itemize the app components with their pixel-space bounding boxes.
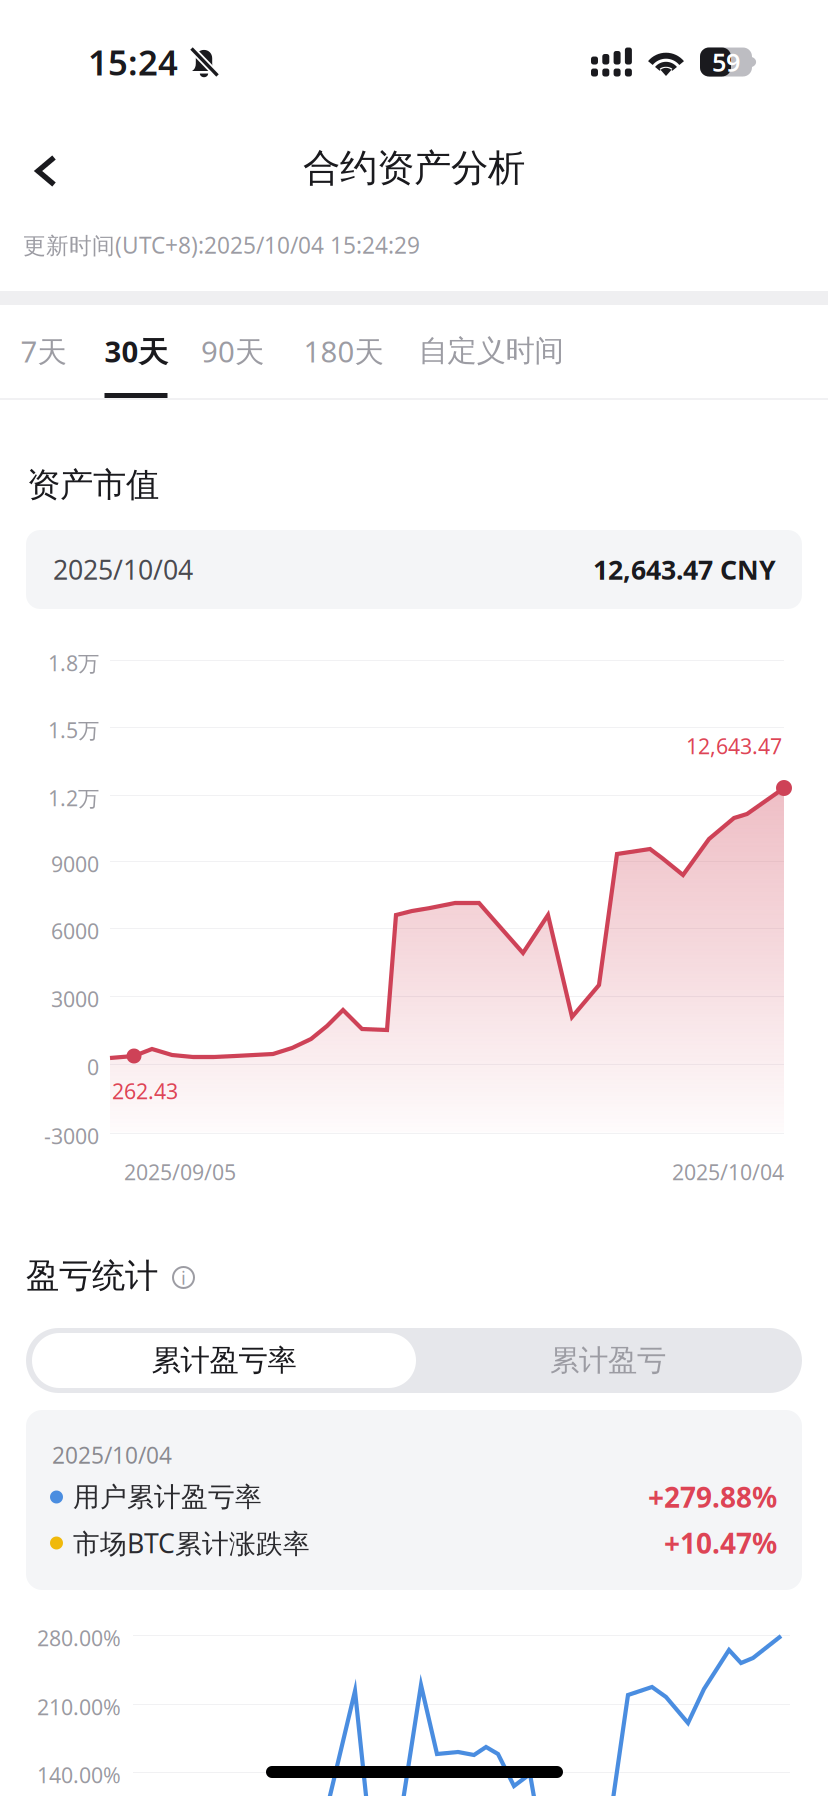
staticText: i — [181, 1265, 186, 1290]
staticText: 资产市值 — [27, 464, 159, 505]
staticText: 180天 — [303, 331, 383, 370]
staticText: +279.88% — [648, 1478, 777, 1516]
staticText: 12,643.47 — [686, 732, 782, 760]
button[interactable]: 累计盈亏率 — [32, 1333, 416, 1388]
staticText: 140.00% — [37, 1761, 121, 1789]
staticText: 市场BTC累计涨跌率 — [73, 1525, 310, 1561]
staticText: 累计盈亏率 — [151, 1342, 296, 1378]
button[interactable]: 累计盈亏 — [420, 1333, 796, 1388]
button[interactable]: 30天 — [86, 319, 186, 409]
staticText: 59 — [712, 45, 740, 79]
staticText: 自定义时间 — [418, 333, 563, 369]
staticText: 盈亏统计 — [26, 1255, 158, 1296]
staticText: 9000 — [51, 850, 99, 878]
staticText: 累计盈亏 — [550, 1342, 666, 1378]
staticText: 2025/10/04 — [52, 1440, 172, 1470]
staticText: 210.00% — [37, 1693, 121, 1721]
staticText: 1.5万 — [48, 716, 99, 744]
staticText: 90天 — [201, 331, 264, 370]
staticText: 30天 — [104, 331, 167, 370]
button[interactable]: 7天 — [6, 319, 81, 409]
button[interactable]: 自定义时间 — [401, 319, 581, 409]
staticText: -3000 — [44, 1122, 99, 1150]
staticText: 更新时间(UTC+8):2025/10/04 15:24:29 — [23, 230, 420, 260]
staticText: +10.47% — [664, 1524, 777, 1562]
staticText: 262.43 — [112, 1077, 178, 1105]
button[interactable]: 180天 — [286, 319, 401, 409]
staticText: 合约资产分析 — [303, 145, 525, 191]
staticText: 0 — [87, 1053, 99, 1081]
staticText: 1.8万 — [48, 649, 99, 677]
button[interactable]: Back — [0, 140, 92, 202]
button[interactable]: 90天 — [183, 319, 282, 409]
staticText: 1.2万 — [48, 784, 99, 812]
staticText: 7天 — [20, 331, 66, 370]
staticText: 2025/10/04 — [53, 552, 193, 587]
staticText: 6000 — [51, 917, 99, 945]
staticText: 2025/09/05 — [124, 1158, 236, 1186]
staticText: 280.00% — [37, 1624, 121, 1652]
staticText: 用户累计盈亏率 — [73, 1481, 262, 1513]
staticText: 3000 — [51, 985, 99, 1013]
staticText: 2025/10/04 — [672, 1158, 784, 1186]
staticText: 15:24 — [88, 39, 178, 85]
staticText: 12,643.47 CNY — [593, 552, 776, 587]
